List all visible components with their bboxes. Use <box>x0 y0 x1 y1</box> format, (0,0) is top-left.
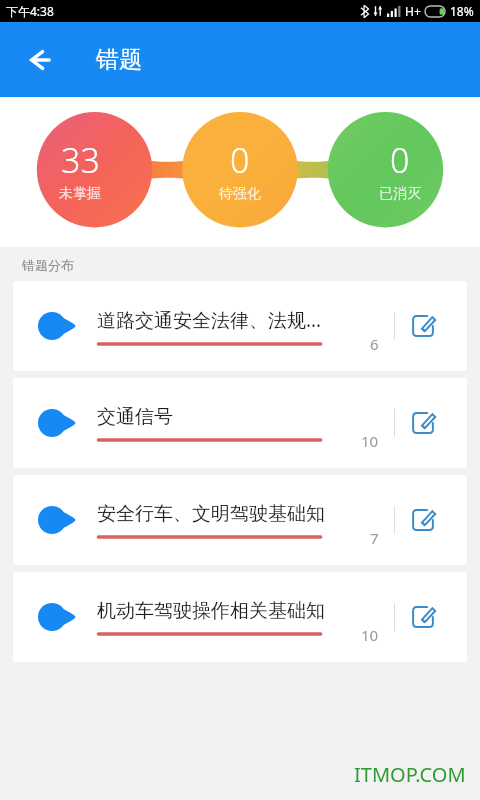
button[interactable]: 0 <box>320 97 480 247</box>
staticText: 10 <box>361 431 379 451</box>
button[interactable]: 机动车驾驶操作相关基础知 <box>13 572 467 662</box>
button[interactable]: Edit <box>401 498 445 542</box>
staticText: 0 <box>230 137 250 183</box>
staticText: 交通信号 <box>97 405 357 429</box>
staticText: 7 <box>370 528 379 548</box>
staticText: 错题分布 <box>22 257 74 273</box>
staticText: ITMOP.COM <box>354 761 466 788</box>
staticText: 道路交通安全法律、法规… <box>97 307 357 333</box>
staticText: 18% <box>450 3 474 19</box>
button[interactable]: 交通信号 <box>13 378 467 468</box>
staticText: 未掌握 <box>59 185 101 203</box>
button[interactable]: Back <box>16 36 64 84</box>
staticText: 错题 <box>96 45 142 74</box>
staticText: 下午4:38 <box>6 3 54 19</box>
staticText: 33 <box>61 137 100 183</box>
button[interactable]: Edit <box>401 401 445 445</box>
button[interactable]: Edit <box>401 595 445 639</box>
staticText: 6 <box>370 334 379 354</box>
staticText: 安全行车、文明驾驶基础知 <box>97 502 357 526</box>
staticText: H+ <box>405 3 421 19</box>
staticText: 机动车驾驶操作相关基础知 <box>97 599 357 623</box>
button[interactable]: 安全行车、文明驾驶基础知 <box>13 475 467 565</box>
staticText: 待强化 <box>219 185 261 203</box>
staticText: 10 <box>361 625 379 645</box>
button[interactable]: 0 <box>160 97 320 247</box>
staticText: 已消灭 <box>379 185 421 203</box>
button[interactable]: 33 <box>0 97 160 247</box>
button[interactable]: Edit <box>401 304 445 348</box>
staticText: 0 <box>390 137 410 183</box>
button[interactable]: 道路交通安全法律、法规… <box>13 281 467 371</box>
